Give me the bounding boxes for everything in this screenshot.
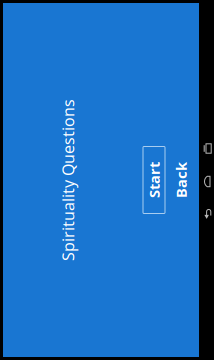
staticText: Start <box>136 170 172 190</box>
button[interactable]: Home <box>199 170 213 192</box>
staticText: Back <box>163 170 199 190</box>
button[interactable]: Back <box>199 202 213 224</box>
button[interactable]: Back <box>172 160 190 200</box>
button[interactable]: Start <box>143 146 165 213</box>
button[interactable]: Recent apps <box>199 137 213 159</box>
staticText: Spirituality Questions <box>0 169 149 191</box>
